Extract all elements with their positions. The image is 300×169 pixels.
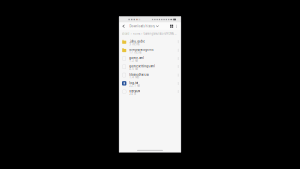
staticText: game.xml <box>129 56 144 60</box>
button[interactable]: tempsaveagents <box>119 46 181 54</box>
button[interactable]: game.xml <box>119 54 181 63</box>
button[interactable]: More options <box>174 22 179 30</box>
button[interactable]: gamesettings.xml <box>119 63 181 71</box>
button[interactable]: Back <box>120 22 127 30</box>
staticText: GamingEmulators/ROMs/Mobile <box>143 32 177 35</box>
staticText: Roms <box>133 32 140 35</box>
button[interactable]: GamingEmulators/ROMs/Mobile <box>143 32 177 35</box>
staticText: 17 items <box>129 51 141 54</box>
staticText: tempsaveagents <box>129 48 153 51</box>
staticText: VERSION <box>129 89 140 93</box>
staticText: › <box>131 32 132 35</box>
staticText: libsnes9xes.so <box>129 73 149 76</box>
button[interactable]: VERSION <box>119 87 181 96</box>
staticText: Downloads history <box>129 24 154 28</box>
button[interactable]: Grid view <box>169 22 174 30</box>
button[interactable]: Downloads history <box>127 22 159 30</box>
staticText: 24 B <box>129 92 136 96</box>
staticText: 22.1 kB <box>129 84 140 87</box>
staticText: log.txt <box>129 81 138 85</box>
staticText: gamesettings.xml <box>129 64 155 68</box>
staticText: 1.2 kB <box>129 59 138 62</box>
button[interactable]: libsnes9xes.so <box>119 71 181 79</box>
staticText: 4.5 kB <box>129 67 138 71</box>
button[interactable]: .jshu.cache <box>119 38 181 46</box>
staticText: 1.4 MB <box>129 75 139 79</box>
button[interactable]: sdcard <box>122 32 130 35</box>
staticText: sdcard <box>122 32 130 35</box>
button[interactable]: log.txt <box>119 79 181 87</box>
button[interactable]: Roms <box>133 32 140 35</box>
staticText: 3 items <box>129 42 139 46</box>
staticText: › <box>141 32 142 35</box>
staticText: .jshu.cache <box>129 40 145 43</box>
